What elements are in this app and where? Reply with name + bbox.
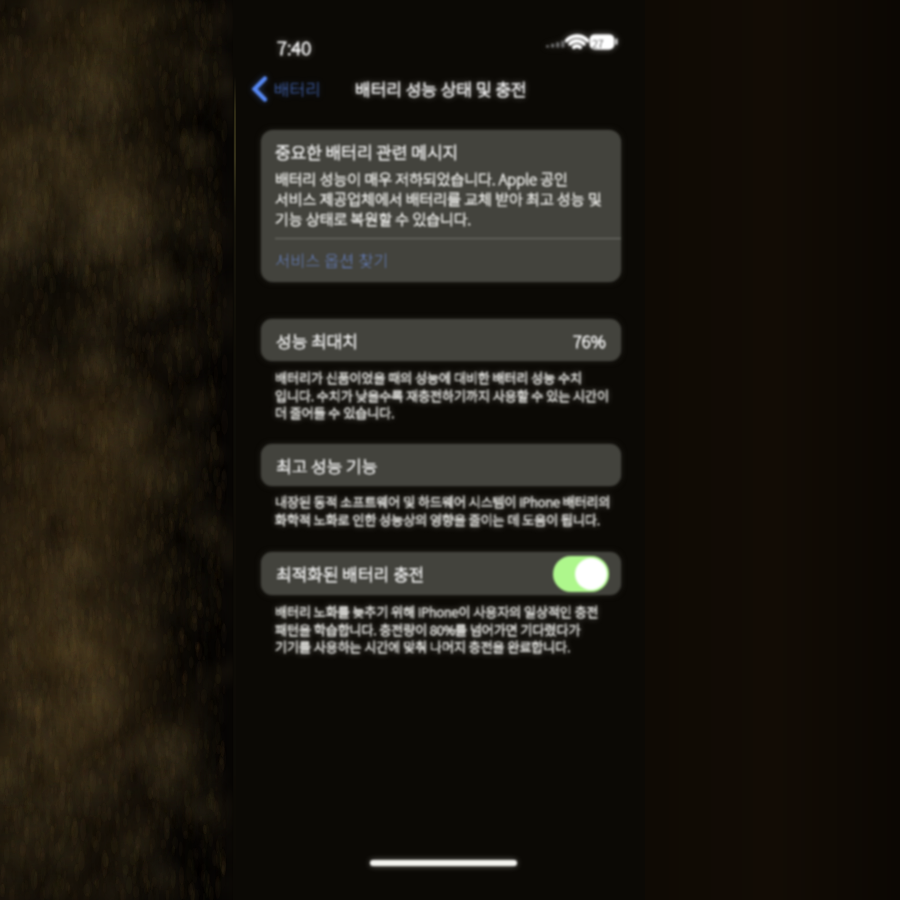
button[interactable]: 최고 성능 기능 xyxy=(261,444,621,486)
staticText: 배터리 성능이 매우 저하되었습니다. Apple 공인 서비스 제공업체에서 … xyxy=(275,168,602,230)
staticText: 76% xyxy=(573,328,606,353)
staticText: 최고 성능 기능 xyxy=(276,453,378,478)
staticText: 7:40 xyxy=(277,33,312,61)
button[interactable]: 최적화된 배터리 충전 켜기 xyxy=(553,556,609,592)
button[interactable]: 최고 성능 기능 xyxy=(261,444,621,486)
staticText: 내장된 동적 소프트웨어 및 하드웨어 시스템이 iPhone 배터리의 화학적… xyxy=(275,492,611,529)
staticText: 배터리 노화를 늦추기 위해 iPhone이 사용자의 일상적인 충전 패턴을 … xyxy=(275,602,599,656)
staticText: 최적화된 배터리 충전 xyxy=(276,561,425,586)
button[interactable]: 최적화된 배터리 충전 xyxy=(261,552,621,595)
staticText: 성능 최대치 xyxy=(276,328,358,353)
staticText: 76% xyxy=(573,328,606,353)
button[interactable]: 성능 최대치 xyxy=(261,319,621,361)
staticText: 성능 최대치 xyxy=(276,328,358,353)
staticText: 배터리가 신품이었을 때의 성능에 대비한 배터리 성능 수치 입니다. 수치가… xyxy=(275,368,609,422)
button[interactable]: 배터리 xyxy=(247,72,327,105)
staticText: 배터리 xyxy=(274,76,321,101)
staticText: 배터리 xyxy=(274,76,321,101)
button[interactable]: 서비스 옵션 찾기 xyxy=(261,239,621,282)
staticText: 배터리 성능 상태 및 충전 xyxy=(355,76,527,101)
button[interactable]: 최적화된 배터리 충전 켜기 xyxy=(553,556,609,592)
staticText: 내장된 동적 소프트웨어 및 하드웨어 시스템이 iPhone 배터리의 화학적… xyxy=(275,492,611,529)
staticText: 서비스 옵션 찾기 xyxy=(275,248,389,272)
staticText: 배터리 성능 상태 및 충전 xyxy=(355,76,527,101)
staticText: 서비스 옵션 찾기 xyxy=(275,248,389,272)
staticText: 27 xyxy=(592,35,604,51)
staticText: 7:40 xyxy=(277,33,312,61)
staticText: 배터리 성능이 매우 저하되었습니다. Apple 공인 서비스 제공업체에서 … xyxy=(275,168,602,230)
staticText: 최적화된 배터리 충전 xyxy=(276,561,425,586)
staticText: 배터리가 신품이었을 때의 성능에 대비한 배터리 성능 수치 입니다. 수치가… xyxy=(275,368,609,422)
button[interactable]: 배터리 xyxy=(247,72,327,105)
staticText: 27 xyxy=(592,35,604,51)
staticText: 최고 성능 기능 xyxy=(276,453,378,478)
button[interactable]: 성능 최대치 xyxy=(261,319,621,361)
staticText: 중요한 배터리 관련 메시지 xyxy=(275,139,459,164)
staticText: 배터리 노화를 늦추기 위해 iPhone이 사용자의 일상적인 충전 패턴을 … xyxy=(275,602,599,656)
button[interactable]: 최적화된 배터리 충전 xyxy=(261,552,621,595)
staticText: 중요한 배터리 관련 메시지 xyxy=(275,139,459,164)
button[interactable]: 서비스 옵션 찾기 xyxy=(261,239,621,282)
